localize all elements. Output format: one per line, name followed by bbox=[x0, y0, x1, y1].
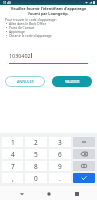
button[interactable]: 5 bbox=[25, 149, 47, 159]
button[interactable]: 4 bbox=[2, 149, 23, 159]
button[interactable]: . bbox=[49, 173, 71, 183]
staticText: • Obtenir le code d'appairage bbox=[6, 33, 52, 37]
staticText: • Point de Contact bbox=[6, 25, 35, 29]
button[interactable]: Close keyboard bbox=[15, 187, 28, 200]
button[interactable]: 9 bbox=[49, 161, 71, 171]
button[interactable]: minus bbox=[73, 137, 95, 147]
staticText: 1030402 bbox=[9, 52, 31, 59]
button[interactable]: 6 bbox=[49, 149, 71, 159]
staticText: 3 bbox=[58, 138, 62, 147]
button[interactable]: 2 bbox=[25, 137, 47, 147]
staticText: 11:46 bbox=[3, 1, 12, 5]
staticText: Veuillez fournir l'identifiant d'appaira… bbox=[5, 6, 92, 16]
button[interactable]: Home bbox=[42, 187, 55, 200]
staticText: 8 bbox=[34, 162, 38, 171]
button[interactable]: ANNULER bbox=[5, 76, 45, 87]
staticText: • Appairage bbox=[6, 29, 25, 33]
button[interactable]: back bbox=[73, 149, 95, 159]
staticText: 2 bbox=[34, 138, 38, 147]
button[interactable]: VALIDER bbox=[52, 76, 92, 87]
button[interactable]: Recent apps bbox=[70, 187, 83, 200]
button[interactable]: 3 bbox=[49, 137, 71, 147]
staticText: ANNULER bbox=[17, 79, 34, 84]
button[interactable]: 7 bbox=[2, 161, 23, 171]
staticText: 6 bbox=[58, 150, 62, 159]
staticText: 0 bbox=[34, 174, 38, 183]
button[interactable]: , bbox=[2, 173, 23, 183]
staticText: • Allez dans le Back Office bbox=[6, 21, 47, 25]
button[interactable]: 1 bbox=[2, 137, 23, 147]
staticText: 1 bbox=[11, 138, 15, 147]
staticText: 9 bbox=[58, 162, 62, 171]
staticText: , bbox=[12, 174, 14, 183]
staticText: Pour trouver le code d'appairage: bbox=[5, 17, 57, 21]
button[interactable]: emoji bbox=[73, 161, 95, 171]
staticText: . bbox=[59, 174, 61, 183]
button[interactable]: 1030402 bbox=[9, 52, 88, 64]
staticText: 4 bbox=[11, 150, 15, 159]
button[interactable]: 0 bbox=[25, 173, 47, 183]
staticText: 5 bbox=[34, 150, 38, 159]
button[interactable]: 8 bbox=[25, 161, 47, 171]
staticText: 7 bbox=[11, 162, 15, 171]
staticText: VALIDER bbox=[65, 79, 80, 84]
button[interactable]: enter bbox=[73, 173, 95, 183]
